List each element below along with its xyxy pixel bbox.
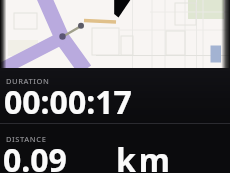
staticText: DISTANCE [6, 134, 47, 144]
staticText: 0.09 [3, 138, 67, 173]
staticText: km [116, 138, 174, 173]
staticText: DURATION [6, 76, 50, 86]
button[interactable]: Map [0, 0, 230, 68]
staticText: 00:00:17 [4, 80, 132, 124]
